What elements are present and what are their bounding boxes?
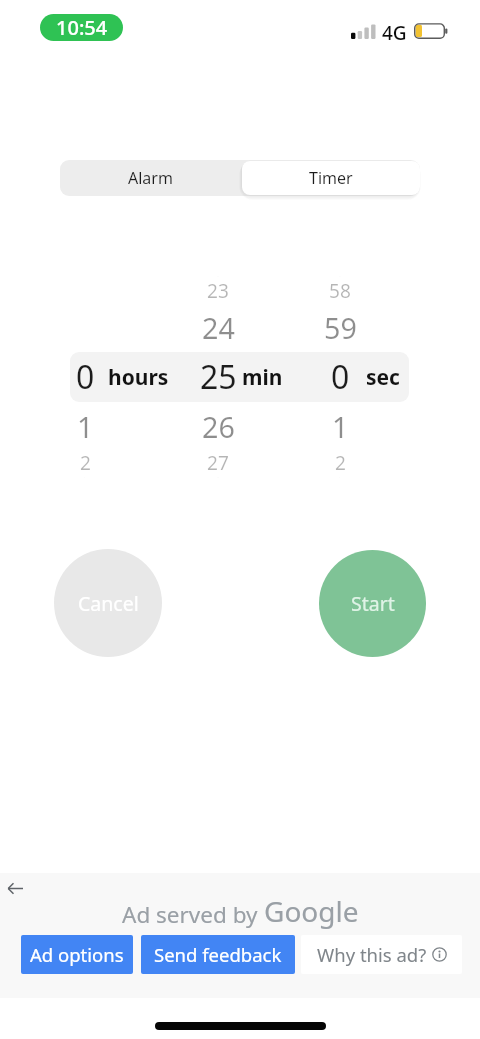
staticText: Cancel — [78, 590, 139, 617]
button[interactable]: Start — [319, 550, 426, 657]
staticText: Why this ad? — [317, 942, 432, 967]
staticText: 4G — [382, 20, 407, 46]
button[interactable]: 26 — [148, 398, 288, 454]
staticText: sec — [366, 363, 400, 392]
staticText: Google — [264, 892, 359, 930]
staticText: 58 — [329, 278, 351, 304]
staticText: 23 — [207, 278, 229, 304]
button[interactable]: 24 — [148, 299, 288, 355]
staticText: 1 — [77, 407, 94, 446]
button[interactable]: 2 — [15, 435, 155, 491]
button[interactable]: 58 — [270, 263, 410, 319]
button[interactable]: 22 — [148, 248, 288, 304]
staticText: Timer — [309, 167, 353, 189]
button[interactable]: 0 — [270, 349, 410, 405]
button[interactable]: Alarm — [60, 160, 240, 196]
button[interactable]: Timer — [242, 161, 420, 195]
staticText: Ad options — [30, 942, 124, 967]
staticText: 24 — [202, 308, 235, 347]
staticText: 27 — [207, 450, 229, 476]
staticText: hours — [108, 363, 169, 392]
button[interactable]: Why this ad? — [301, 935, 462, 974]
staticText: 1 — [332, 407, 349, 446]
staticText: 59 — [324, 308, 357, 347]
staticText: 25 — [200, 355, 237, 399]
staticText: 2 — [80, 450, 91, 476]
staticText: 0 — [331, 355, 350, 399]
button[interactable]: 1 — [270, 398, 410, 454]
staticText: Alarm — [128, 167, 173, 189]
button[interactable]: Ad options — [21, 935, 133, 974]
button[interactable]: 1 — [15, 398, 155, 454]
staticText: 26 — [202, 407, 235, 446]
button[interactable]: 25 — [148, 349, 288, 405]
staticText: 10:54 — [56, 14, 108, 41]
staticText: 2 — [335, 450, 346, 476]
button[interactable]: 2 — [270, 435, 410, 491]
button[interactable]: 57 — [270, 248, 410, 304]
button[interactable]: 3 — [15, 449, 155, 505]
button[interactable]: Send feedback — [141, 935, 295, 974]
button[interactable]: 0 — [15, 349, 155, 405]
button[interactable]: Back — [1, 874, 29, 902]
button[interactable]: 3 — [270, 449, 410, 505]
button[interactable]: 59 — [270, 299, 410, 355]
staticText: Send feedback — [154, 942, 282, 967]
staticText: Start — [351, 590, 395, 617]
button[interactable]: 23 — [148, 263, 288, 319]
staticText: 0 — [76, 355, 95, 399]
button[interactable]: 27 — [148, 435, 288, 491]
button[interactable]: Cancel — [54, 549, 162, 657]
staticText: Ad served by — [122, 899, 264, 930]
button[interactable]: 28 — [148, 449, 288, 505]
staticText: min — [242, 363, 283, 392]
